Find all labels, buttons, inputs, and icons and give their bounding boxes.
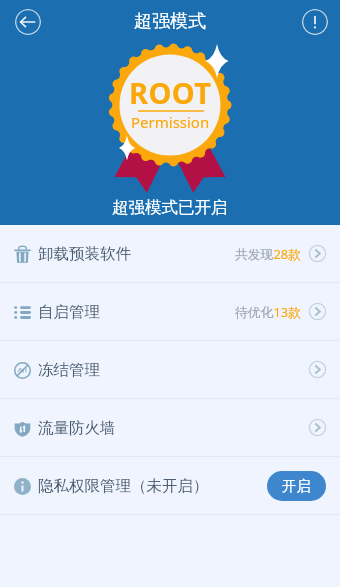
staticText: 卸载预装软件 (38, 244, 131, 264)
button[interactable]: Info (302, 9, 328, 35)
staticText: 自启管理 (38, 302, 100, 322)
staticText: ROOT (129, 73, 212, 112)
staticText: 超强模式已开启 (112, 197, 228, 218)
button[interactable]: 隐私权限管理（未开启） (0, 457, 340, 514)
button[interactable]: 流量防火墙 (0, 399, 340, 456)
button[interactable]: 开启 (267, 471, 326, 501)
button[interactable]: 自启管理 (0, 283, 340, 340)
staticText: 隐私权限管理（未开启） (38, 476, 209, 496)
button[interactable]: Back (15, 9, 41, 35)
staticText: 冻结管理 (38, 360, 100, 380)
staticText: 流量防火墙 (38, 418, 116, 438)
button[interactable]: 卸载预装软件 (0, 225, 340, 282)
button[interactable]: 冻结管理 (0, 341, 340, 398)
staticText: 待优化13款 (235, 303, 301, 320)
staticText: Permission (131, 112, 210, 132)
staticText: 超强模式 (134, 10, 206, 33)
staticText: 开启 (282, 477, 311, 495)
staticText: 共发现28款 (235, 245, 301, 262)
